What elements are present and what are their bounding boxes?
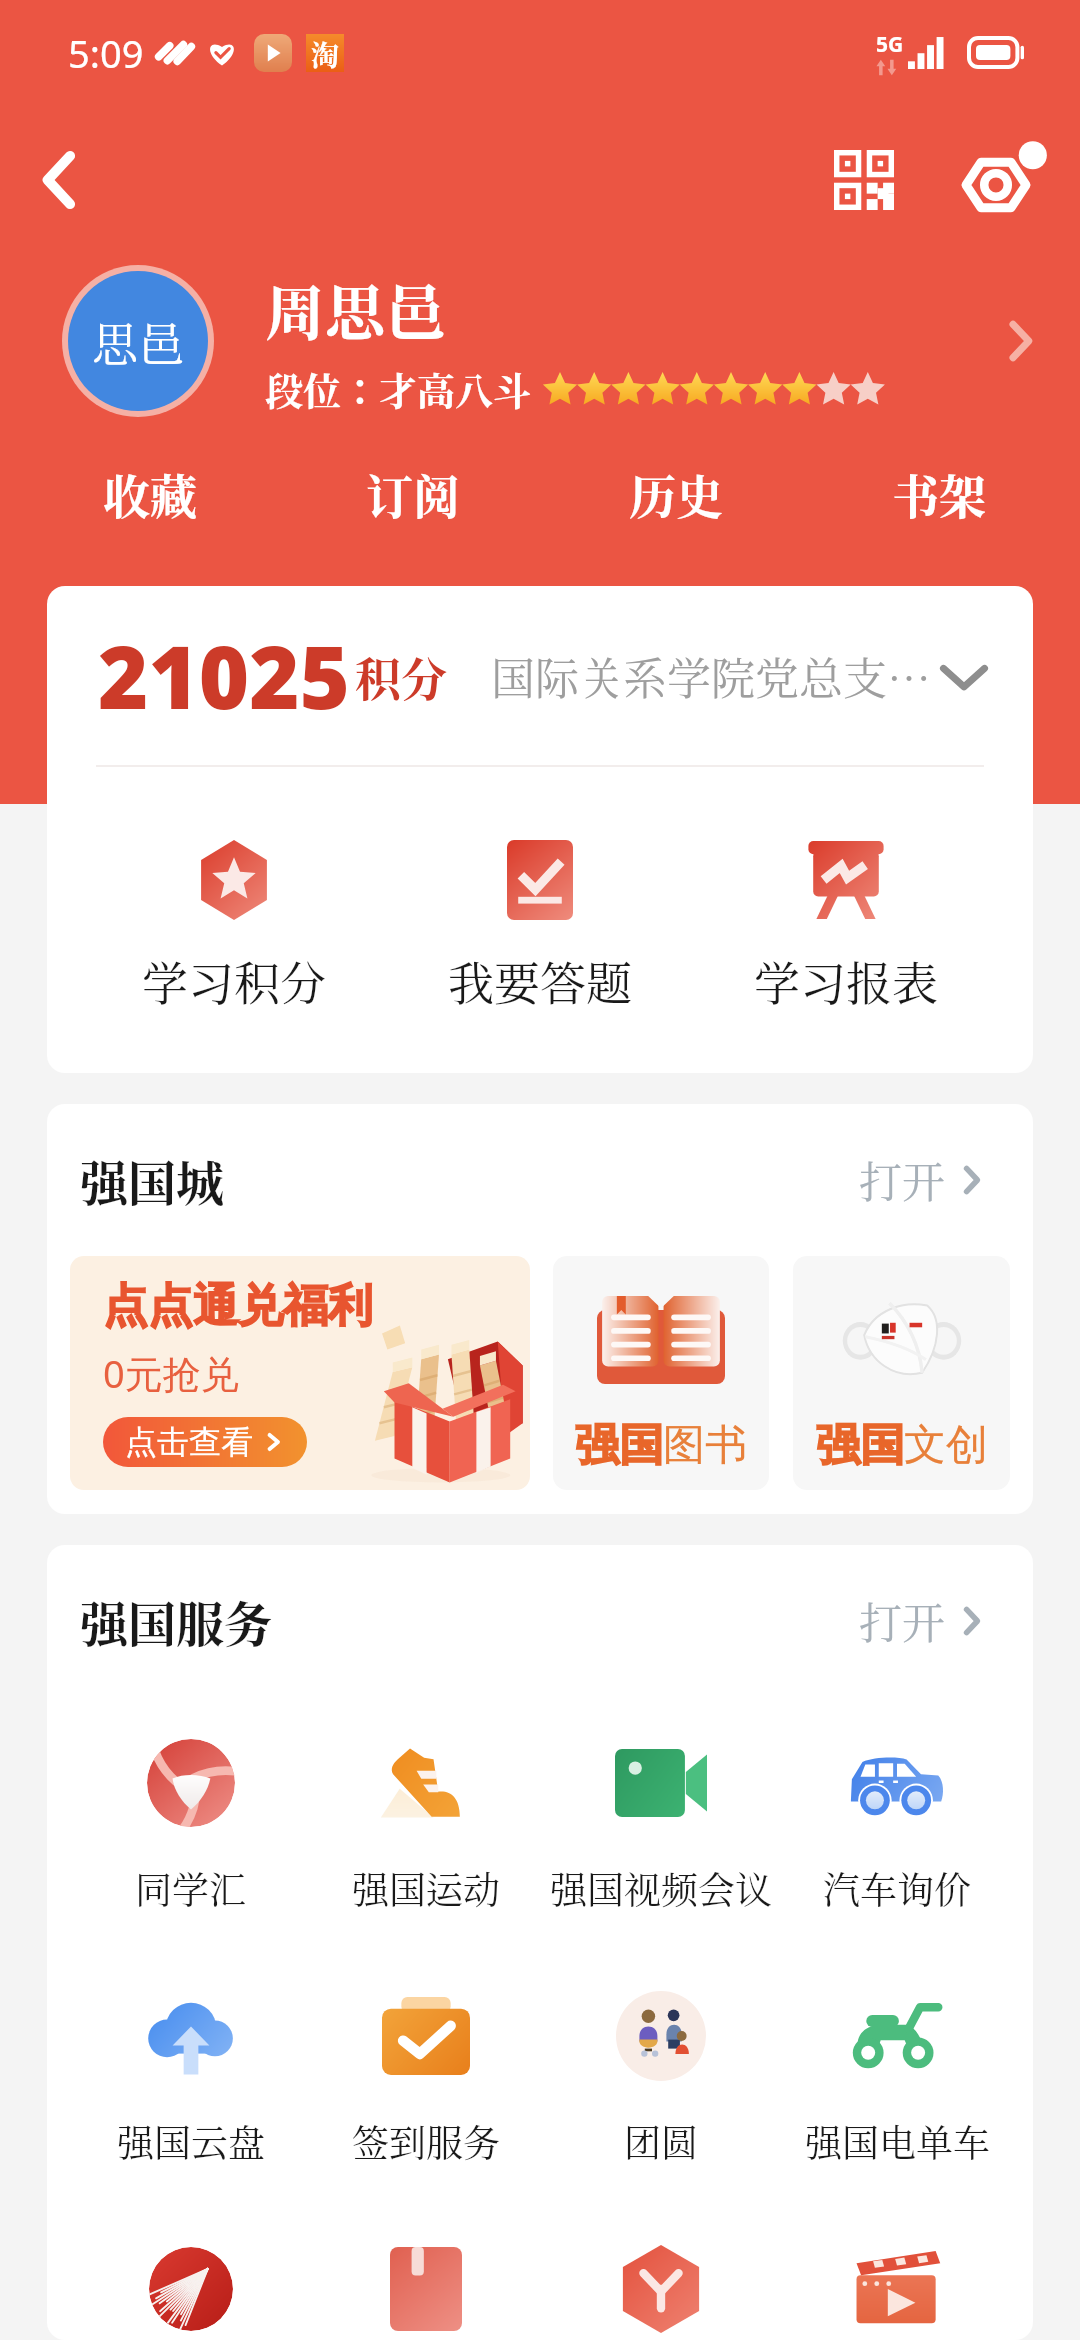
button[interactable]: Settings (956, 130, 1056, 230)
button[interactable]: Profile: 周思邑 (0, 255, 1080, 427)
button[interactable]: 强国电单车 (779, 1950, 1015, 2203)
staticText: 21025 (98, 617, 350, 734)
staticText: 签到服务 (352, 2114, 500, 2167)
button[interactable]: 强国优选 (543, 2203, 779, 2340)
button[interactable]: 签到服务 (308, 1950, 543, 2203)
staticText: 淘 (311, 34, 340, 72)
button[interactable]: 同学汇 (73, 1697, 308, 1950)
staticText: 同学汇 (135, 1861, 246, 1914)
staticText: 强国城 (80, 1146, 225, 1215)
button[interactable]: 历史 (544, 427, 807, 561)
staticText: 书架 (892, 460, 986, 528)
staticText: 历史 (629, 460, 723, 528)
button[interactable]: Back (12, 132, 108, 228)
button[interactable]: 强国运动 (308, 1697, 543, 1950)
staticText: 国际关系学院党总支… (491, 644, 931, 707)
button[interactable]: 点点通兑福利 (70, 1256, 530, 1490)
staticText: 点点通兑福利 (103, 1278, 373, 1335)
staticText: 我要答题 (448, 947, 632, 1013)
staticText: 打开 (859, 1590, 945, 1652)
staticText: 思邑 (92, 308, 184, 374)
staticText: 周思邑 (265, 266, 445, 352)
button[interactable]: 21025 积分, 国际关系学院党总支, 展开 (98, 586, 991, 765)
button[interactable]: 书架 (807, 427, 1070, 561)
button[interactable]: 我要答题 (387, 767, 693, 1073)
button[interactable]: 汽车询价 (779, 1697, 1015, 1950)
button[interactable]: 订阅 (281, 427, 544, 561)
staticText: 汽车询价 (823, 1861, 971, 1914)
button[interactable]: 打开 (859, 1149, 989, 1211)
button[interactable]: 强国视频会议 (543, 1697, 779, 1950)
staticText: 点击查看 (125, 1422, 253, 1462)
staticText: 段位：才高八斗 (265, 361, 532, 416)
button[interactable]: 学习积分 (81, 767, 387, 1073)
staticText: 图书 (663, 1419, 747, 1472)
staticText: 团圆 (624, 2114, 698, 2167)
staticText: 强国云盘 (117, 2114, 265, 2167)
staticText: 积分 (355, 643, 447, 709)
staticText: 强国 (816, 1418, 904, 1473)
button[interactable]: 团圆 (543, 1950, 779, 2203)
staticText: 5G (876, 30, 904, 59)
staticText: 5:09 (68, 27, 144, 79)
staticText: 0元抢兑 (103, 1347, 239, 1399)
button[interactable]: 点击查看 (125, 1417, 285, 1467)
staticText: 文创 (904, 1419, 988, 1472)
staticText: 强国 (575, 1418, 663, 1473)
staticText: 强国运动 (352, 1861, 500, 1914)
button[interactable]: 强国 (553, 1256, 769, 1490)
staticText: 订阅 (366, 460, 460, 528)
button[interactable]: 强国书画 (308, 2203, 543, 2340)
staticText: 学习报表 (754, 947, 938, 1013)
button[interactable]: 强国 (793, 1256, 1010, 1490)
staticText: 学习积分 (142, 947, 326, 1013)
button[interactable]: Scan QR code (814, 130, 914, 230)
staticText: 打开 (859, 1149, 945, 1211)
button[interactable]: 打开 (859, 1590, 989, 1652)
button[interactable]: 强国影视 (779, 2203, 1015, 2340)
staticText: 强国视频会议 (550, 1861, 772, 1914)
button[interactable]: 收藏 (18, 427, 281, 561)
button[interactable]: 学习报表 (693, 767, 999, 1073)
button[interactable]: 同心 (73, 2203, 308, 2340)
staticText: 强国服务 (80, 1587, 273, 1656)
staticText: 强国电单车 (805, 2114, 990, 2167)
button[interactable]: 强国云盘 (73, 1950, 308, 2203)
staticText: 收藏 (103, 460, 197, 528)
